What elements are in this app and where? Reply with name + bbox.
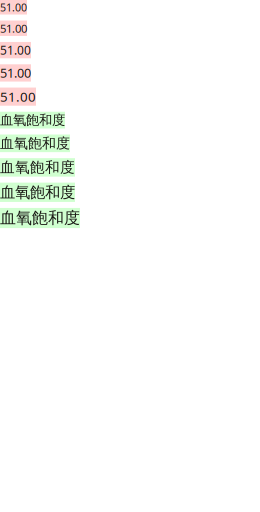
staticText: 血氧飽和度 — [0, 112, 65, 128]
staticText: 51.00 — [0, 0, 27, 14]
staticText: 血氧飽和度 — [0, 183, 75, 202]
staticText: 血氧飽和度 — [0, 158, 75, 177]
staticText: 51.00 — [0, 20, 27, 36]
staticText: 血氧飽和度 — [0, 208, 80, 228]
staticText: 血氧飽和度 — [0, 134, 70, 152]
staticText: 51.00 — [0, 64, 31, 82]
staticText: 51.00 — [0, 88, 36, 106]
staticText: 51.00 — [0, 42, 31, 58]
